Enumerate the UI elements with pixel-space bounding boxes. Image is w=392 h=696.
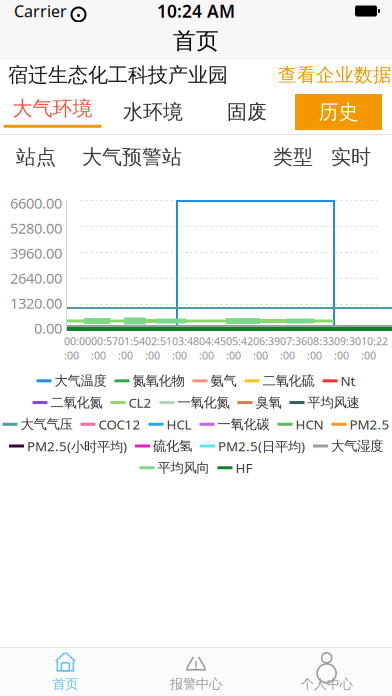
button[interactable]: 个人中心 [261,648,392,696]
staticText: 首页 [52,676,78,692]
staticText: 固废 [227,100,267,124]
staticText: 2640.00 [10,268,62,288]
staticText [67,0,71,22]
staticText: 大气预警站 [82,145,182,169]
staticText: 报警中心 [170,676,222,692]
staticText: 00:00:00 [64,334,91,362]
staticText: 氮氧化物 [132,373,184,389]
staticText: 硫化氢 [153,438,192,454]
staticText: 04:45:00 [199,334,226,362]
staticText: 1320.00 [10,293,62,313]
staticText: 平均风速 [307,394,359,411]
button[interactable]: 实时 [322,137,380,177]
staticText: 10:24 AM [157,0,235,22]
button[interactable]: 站点 [0,137,72,177]
staticText: 01:54:00 [118,334,145,362]
staticText: 大气温度 [54,373,106,389]
staticText: 08:33:00 [307,334,334,362]
staticText: 5280.00 [10,218,62,238]
staticText: 类型 [273,145,313,169]
staticText: 07:36:00 [280,334,307,362]
staticText: 臭氧 [255,394,281,411]
staticText: 大气气压 [20,416,72,432]
button[interactable]: 水环境 [105,92,201,132]
staticText: 大气环境 [12,96,92,121]
staticText: 6600.00 [10,193,62,213]
staticText: 查看企业数据 [278,63,392,86]
staticText: COC12 [98,415,140,433]
staticText: 站点 [16,145,56,169]
staticText: 水环境 [123,100,183,124]
staticText: 06:39:00 [253,334,280,362]
staticText: 二氧化氮 [50,394,102,411]
staticText: CL2 [128,394,151,411]
staticText: PM2.5(日平均) [218,437,305,455]
staticText: 0.00 [34,318,62,338]
staticText: 首页 [173,27,219,55]
button[interactable]: 查看企业数据 [278,63,392,86]
staticText: 02:51:00 [145,334,172,362]
button[interactable]: 首页 [0,648,131,696]
staticText: 09:30:00 [334,334,361,362]
staticText: 10:22:00 [361,334,388,362]
button[interactable]: 固废 [201,92,293,132]
staticText: Carrier [14,0,67,22]
staticText: 实时 [331,145,371,169]
staticText: HCL [166,415,191,433]
staticText: HCN [295,415,323,433]
staticText: 氨气 [210,373,236,389]
staticText: 历史 [318,100,358,124]
staticText: 03:48:00 [172,334,199,362]
staticText: HF [235,459,252,477]
button[interactable]: 大气环境 [0,92,105,132]
button[interactable]: 类型 [264,137,322,177]
staticText: 00:57:00 [91,334,118,362]
staticText: 宿迁生态化工科技产业园 [8,63,228,87]
button[interactable]: 历史 [295,94,382,130]
staticText: Nt [340,372,355,390]
staticText: PM2.5 [349,415,389,433]
button[interactable]: 大气预警站 [72,137,192,177]
staticText: 二氧化硫 [262,373,314,389]
staticText: 个人中心 [301,676,353,692]
staticText: 3960.00 [10,243,62,263]
staticText: 平均风向 [157,460,209,476]
staticText: PM2.5(小时平均) [27,437,127,455]
staticText: 05:42:00 [226,334,253,362]
button[interactable]: 报警中心 [131,648,261,696]
staticText: 大气湿度 [331,438,383,454]
staticText: 一氧化氮 [177,394,229,411]
staticText: 一氧化碳 [217,416,269,432]
